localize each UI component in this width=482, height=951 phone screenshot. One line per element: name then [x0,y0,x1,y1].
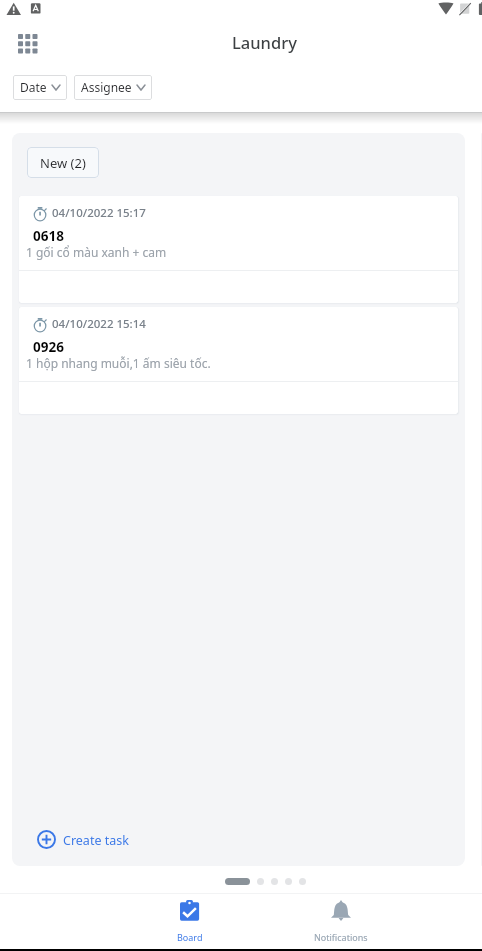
button[interactable]: Notifications [300,894,381,949]
button[interactable]: Assignee [74,75,152,100]
button[interactable]: Apps [12,28,44,60]
staticText: Notifications [314,931,368,943]
staticText: 04/10/2022 15:17 [52,205,146,221]
staticText: 0618 [33,227,64,245]
button[interactable]: Date [13,75,67,100]
staticText: Assignee [81,79,132,95]
staticText: 1 hộp nhang muỗi,1 ấm siêu tốc. [26,355,211,371]
staticText: 0926 [33,338,64,356]
staticText: 04/10/2022 15:14 [52,316,146,332]
staticText: Board [177,931,203,943]
staticText: 1 gối cổ màu xanh + cam [26,244,167,260]
button[interactable]: Create task [12,821,465,866]
staticText: Create task [63,832,129,849]
staticText: Laundry [232,31,297,53]
button[interactable]: 04/10/2022 15:14 [19,307,458,414]
button[interactable]: Board [150,894,230,949]
staticText: Date [20,79,47,95]
button[interactable]: 04/10/2022 15:17 [19,196,458,303]
button[interactable]: New (2) [27,147,99,178]
staticText: New (2) [40,154,86,172]
